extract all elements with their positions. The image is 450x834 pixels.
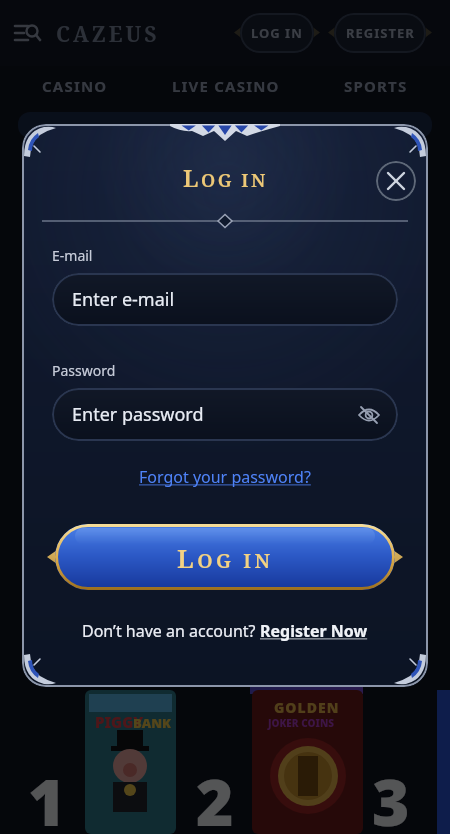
staticText: GOLDEN bbox=[274, 698, 340, 717]
staticText: 3 bbox=[372, 758, 410, 834]
staticText: E-mail bbox=[52, 246, 93, 265]
button[interactable]: SPORTS bbox=[344, 76, 408, 96]
staticText: JOKER COINS bbox=[268, 716, 334, 730]
button[interactable]: Enter password bbox=[52, 388, 398, 441]
staticText: PIGGY bbox=[95, 712, 144, 732]
button[interactable] bbox=[14, 23, 42, 45]
button[interactable]: PIGGY bbox=[85, 690, 176, 834]
button[interactable] bbox=[376, 161, 416, 201]
button[interactable]: REGISTER bbox=[328, 10, 432, 55]
button[interactable]: Forgot your password? bbox=[139, 466, 311, 488]
button[interactable]: LIVE CASINO bbox=[172, 76, 280, 96]
button[interactable]: GOLDEN bbox=[252, 690, 363, 834]
staticText: Enter password bbox=[72, 402, 204, 427]
staticText: Enter e-mail bbox=[72, 287, 175, 312]
staticText: 1 bbox=[28, 758, 66, 834]
staticText: REGISTER bbox=[346, 24, 415, 42]
button[interactable]: LOG IN bbox=[234, 10, 320, 55]
staticText: Password bbox=[52, 361, 116, 380]
button[interactable]: CASINO bbox=[42, 76, 108, 96]
staticText: BANK bbox=[133, 714, 171, 732]
staticText: 2 bbox=[196, 758, 234, 834]
staticText: LOG IN bbox=[183, 161, 268, 194]
button[interactable]: Enter e-mail bbox=[52, 273, 398, 326]
staticText: Don’t have an account? bbox=[82, 620, 260, 642]
button[interactable]: Register Now bbox=[260, 620, 368, 642]
staticText: LOG IN bbox=[177, 540, 274, 575]
staticText: CAZEUS bbox=[56, 20, 160, 49]
staticText: LOG IN bbox=[251, 24, 303, 42]
button[interactable]: LOG IN bbox=[47, 524, 403, 590]
